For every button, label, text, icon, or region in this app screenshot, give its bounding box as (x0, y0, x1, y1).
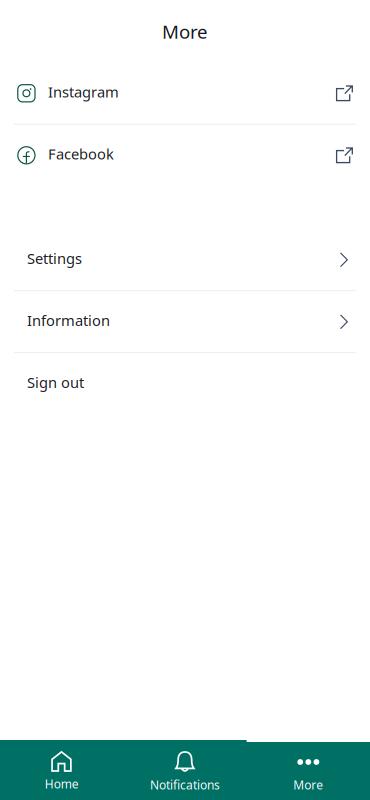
button[interactable]: Sign out (0, 353, 370, 414)
staticText: Home (45, 776, 79, 792)
staticText: More (162, 19, 208, 44)
button[interactable]: Instagram (0, 63, 370, 124)
button[interactable]: Settings (0, 229, 370, 290)
button[interactable]: Notifications (123, 740, 247, 800)
staticText: Facebook (48, 144, 114, 164)
button[interactable]: Information (0, 291, 370, 352)
button[interactable]: Facebook (0, 125, 370, 186)
staticText: Sign out (27, 373, 84, 392)
staticText: Instagram (48, 82, 119, 102)
staticText: Settings (27, 249, 82, 268)
staticText: More (293, 777, 323, 793)
staticText: Notifications (150, 777, 220, 793)
staticText: Information (27, 311, 110, 330)
button[interactable]: More (247, 740, 370, 800)
button[interactable]: Home (0, 740, 123, 800)
